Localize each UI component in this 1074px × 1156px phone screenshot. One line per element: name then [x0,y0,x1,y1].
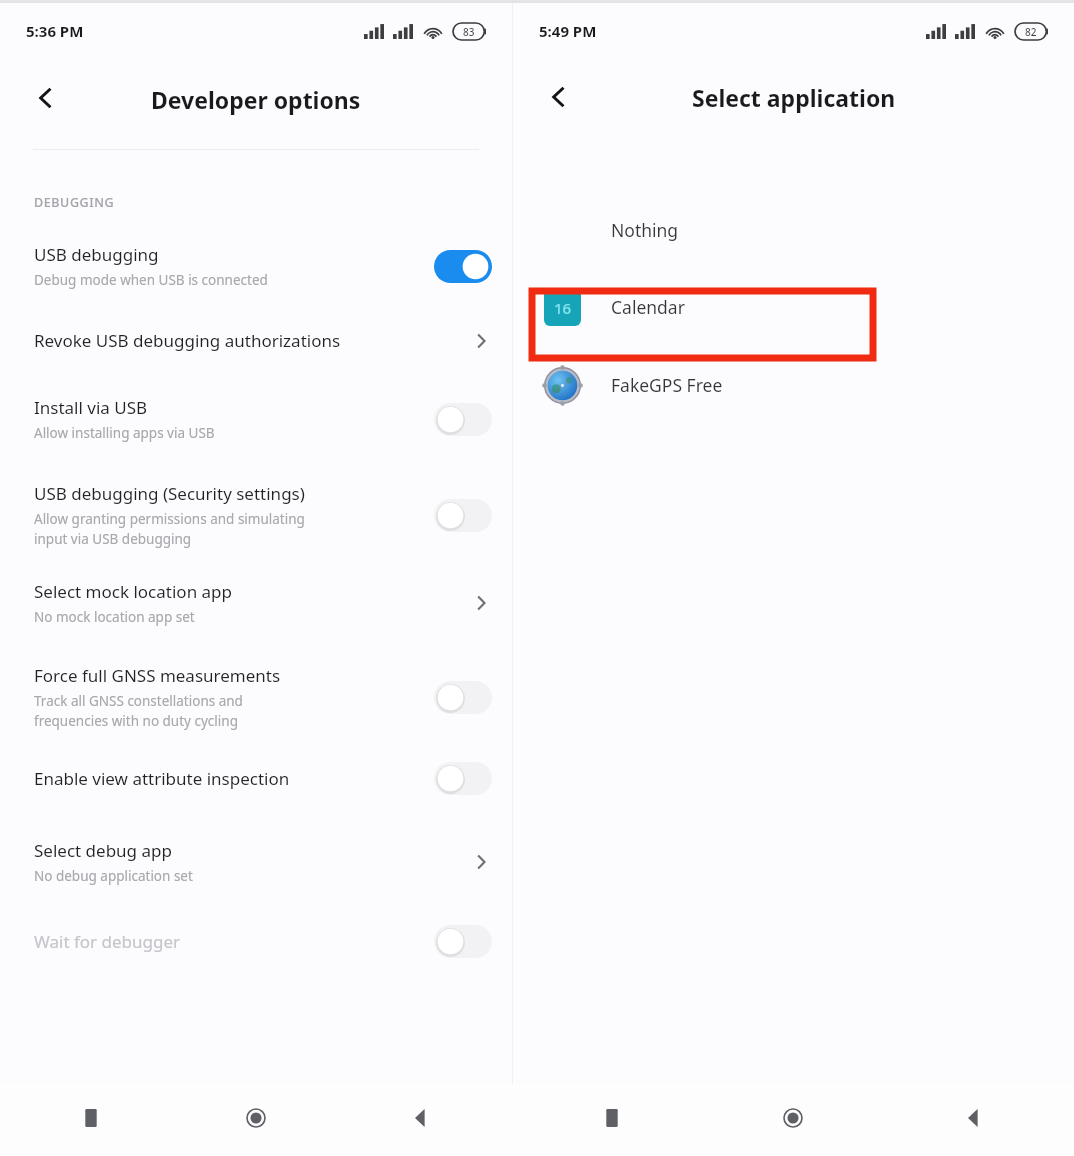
button[interactable]: Recents [584,1090,640,1146]
button[interactable]: FakeGPS Free [513,348,1074,422]
button[interactable]: Back [535,73,583,121]
button[interactable]: 16 [513,270,1074,344]
button[interactable] [434,681,492,714]
staticText: Nothing [611,218,679,242]
staticText: Select mock location app [34,580,232,603]
button[interactable] [434,762,492,795]
button[interactable]: Install via USB [0,396,512,442]
button[interactable] [434,499,492,532]
button[interactable]: Select mock location app [0,580,512,626]
staticText: 5:49 PM [539,21,597,41]
staticText: 82 [1025,25,1037,39]
staticText: Calendar [611,295,685,319]
staticText: Developer options [151,84,361,115]
button[interactable] [434,250,492,283]
staticText: 5:36 PM [26,21,84,41]
button[interactable]: Recents [63,1090,119,1146]
button[interactable] [434,403,492,436]
staticText: Track all GNSS constellations and freque… [34,692,243,730]
staticText: Select debug app [34,839,172,862]
button[interactable]: Home [228,1090,284,1146]
staticText: Revoke USB debugging authorizations [34,329,341,352]
staticText: 83 [463,25,475,39]
staticText: 16 [554,298,572,318]
button[interactable]: Home [765,1090,821,1146]
staticText: Allow installing apps via USB [34,424,215,442]
button[interactable]: Wait for debugger [0,925,512,958]
button[interactable] [434,925,492,958]
staticText: Install via USB [34,396,148,419]
staticText: No debug application set [34,867,193,885]
staticText: Enable view attribute inspection [34,767,290,790]
staticText: DEBUGGING [34,194,115,211]
button[interactable]: Back [393,1090,449,1146]
staticText: Allow granting permissions and simulatin… [34,510,305,548]
button[interactable]: USB debugging (Security settings) [0,482,512,548]
button[interactable]: Revoke USB debugging authorizations [0,329,512,352]
staticText: Select application [692,82,896,113]
button[interactable]: Force full GNSS measurements [0,664,512,730]
button[interactable]: Select debug app [0,839,512,885]
staticText: USB debugging (Security settings) [34,482,305,505]
staticText: USB debugging [34,243,159,266]
button[interactable]: Enable view attribute inspection [0,762,512,795]
staticText: Wait for debugger [34,930,181,953]
button[interactable]: USB debugging [0,243,512,289]
button[interactable]: Back [22,74,70,122]
staticText: FakeGPS Free [611,373,723,397]
staticText: Force full GNSS measurements [34,664,281,687]
button[interactable]: Nothing [513,193,1074,267]
button[interactable]: Back [946,1090,1002,1146]
staticText: No mock location app set [34,608,195,626]
staticText: Debug mode when USB is connected [34,271,268,289]
